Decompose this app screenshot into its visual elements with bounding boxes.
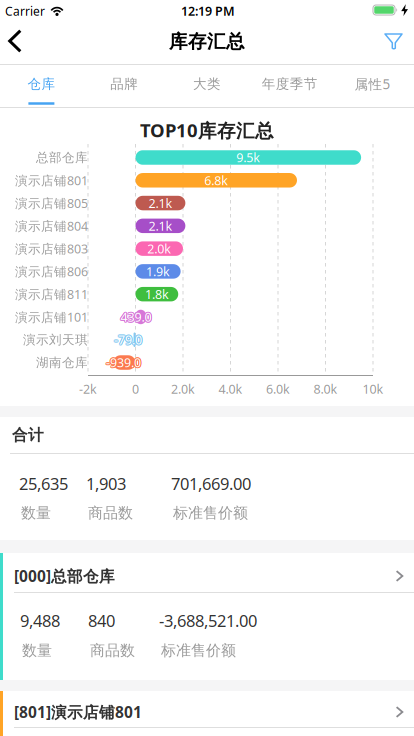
staticText: -79.0 <box>113 331 141 348</box>
staticText: -939.0 <box>107 353 142 370</box>
button[interactable]: 年度季节 <box>249 69 331 99</box>
staticText: 439.0 <box>121 308 152 325</box>
staticText: 2.1k <box>148 217 172 234</box>
staticText: 标准售价额 <box>161 641 236 660</box>
staticText: -79.0 <box>115 331 143 348</box>
staticText: -939.0 <box>105 354 140 371</box>
staticText: 1,903 <box>86 472 126 495</box>
staticText: 12:19 PM <box>181 2 235 19</box>
staticText: 840 <box>88 609 115 632</box>
staticText: -79.0 <box>115 330 143 347</box>
staticText: -939.0 <box>105 355 140 372</box>
staticText: 439.0 <box>120 308 151 325</box>
staticText: [801]演示店铺801 <box>14 701 142 722</box>
staticText: -939.0 <box>107 354 142 371</box>
staticText: 439.0 <box>121 309 152 326</box>
staticText: 演示店铺805 <box>15 194 88 211</box>
staticText: -939.0 <box>106 355 141 372</box>
staticText: 9.5k <box>236 149 260 166</box>
staticText: -939.0 <box>107 355 142 372</box>
staticText: 品牌 <box>110 75 138 92</box>
staticText: 标准售价额 <box>173 504 248 522</box>
staticText: 演示店铺806 <box>15 263 88 280</box>
button[interactable]: 仓库 <box>0 69 82 99</box>
button[interactable]: Back <box>3 26 27 56</box>
staticText: 1.9k <box>146 263 170 280</box>
staticText: 701,669.00 <box>171 472 251 495</box>
button[interactable]: 属性5 <box>332 69 414 99</box>
staticText: 演示店铺804 <box>15 217 88 234</box>
staticText: 439.0 <box>120 309 151 326</box>
button[interactable]: Filter <box>384 33 404 50</box>
staticText: -79.0 <box>113 332 141 349</box>
button[interactable]: [000]总部仓库 <box>0 553 414 680</box>
staticText: 1.8k <box>145 286 169 303</box>
staticText: -79.0 <box>114 331 142 348</box>
staticText: 仓库 <box>27 75 55 92</box>
staticText: 演示店铺101 <box>15 308 88 325</box>
staticText: 演示店铺801 <box>15 172 88 189</box>
staticText: 439.0 <box>120 309 151 326</box>
staticText: 25,635 <box>19 472 68 495</box>
staticText: 439.0 <box>119 308 150 325</box>
staticText: -3,688,521.00 <box>159 609 257 632</box>
staticText: 数量 <box>22 641 52 660</box>
staticText: [000]总部仓库 <box>14 565 115 586</box>
button[interactable]: [801]演示店铺801 <box>0 691 414 736</box>
staticText: 总部仓库 <box>36 150 88 165</box>
staticText: Carrier <box>5 3 45 19</box>
staticText: 商品数 <box>88 504 133 522</box>
staticText: -939.0 <box>106 354 141 371</box>
staticText: 10k <box>362 380 383 397</box>
staticText: 439.0 <box>120 308 151 325</box>
staticText: 大类 <box>193 75 221 92</box>
staticText: 0 <box>132 380 139 397</box>
staticText: 合计 <box>12 425 44 445</box>
staticText: 演示店铺803 <box>15 240 88 257</box>
staticText: 演示店铺811 <box>15 286 88 303</box>
staticText: 2.0k <box>147 240 171 257</box>
staticText: 商品数 <box>90 641 135 660</box>
staticText: 演示刘天琪 <box>23 332 88 348</box>
staticText: 439.0 <box>120 307 151 324</box>
staticText: 6.0k <box>266 380 290 397</box>
staticText: 8.0k <box>313 380 337 397</box>
staticText: 439.0 <box>121 308 152 325</box>
staticText: -79.0 <box>114 330 142 347</box>
staticText: 6.8k <box>204 172 228 189</box>
staticText: 2.1k <box>148 194 172 211</box>
staticText: 4.0k <box>218 380 242 397</box>
staticText: 9,488 <box>20 609 60 632</box>
staticText: 数量 <box>21 504 51 522</box>
button[interactable]: 大类 <box>166 69 248 99</box>
staticText: -79.0 <box>114 332 142 349</box>
staticText: 库存汇总 <box>169 30 245 53</box>
staticText: -939.0 <box>106 353 141 370</box>
staticText: 属性5 <box>355 75 391 93</box>
staticText: 湖南仓库 <box>36 355 88 370</box>
staticText: -79.0 <box>113 330 141 347</box>
staticText: 年度季节 <box>262 75 318 92</box>
button[interactable]: 品牌 <box>83 69 165 99</box>
staticText: -79.0 <box>115 332 143 349</box>
staticText: -2k <box>79 380 97 397</box>
staticText: TOP10库存汇总 <box>140 117 274 143</box>
staticText: 2.0k <box>171 380 195 397</box>
staticText: -939.0 <box>105 353 140 370</box>
